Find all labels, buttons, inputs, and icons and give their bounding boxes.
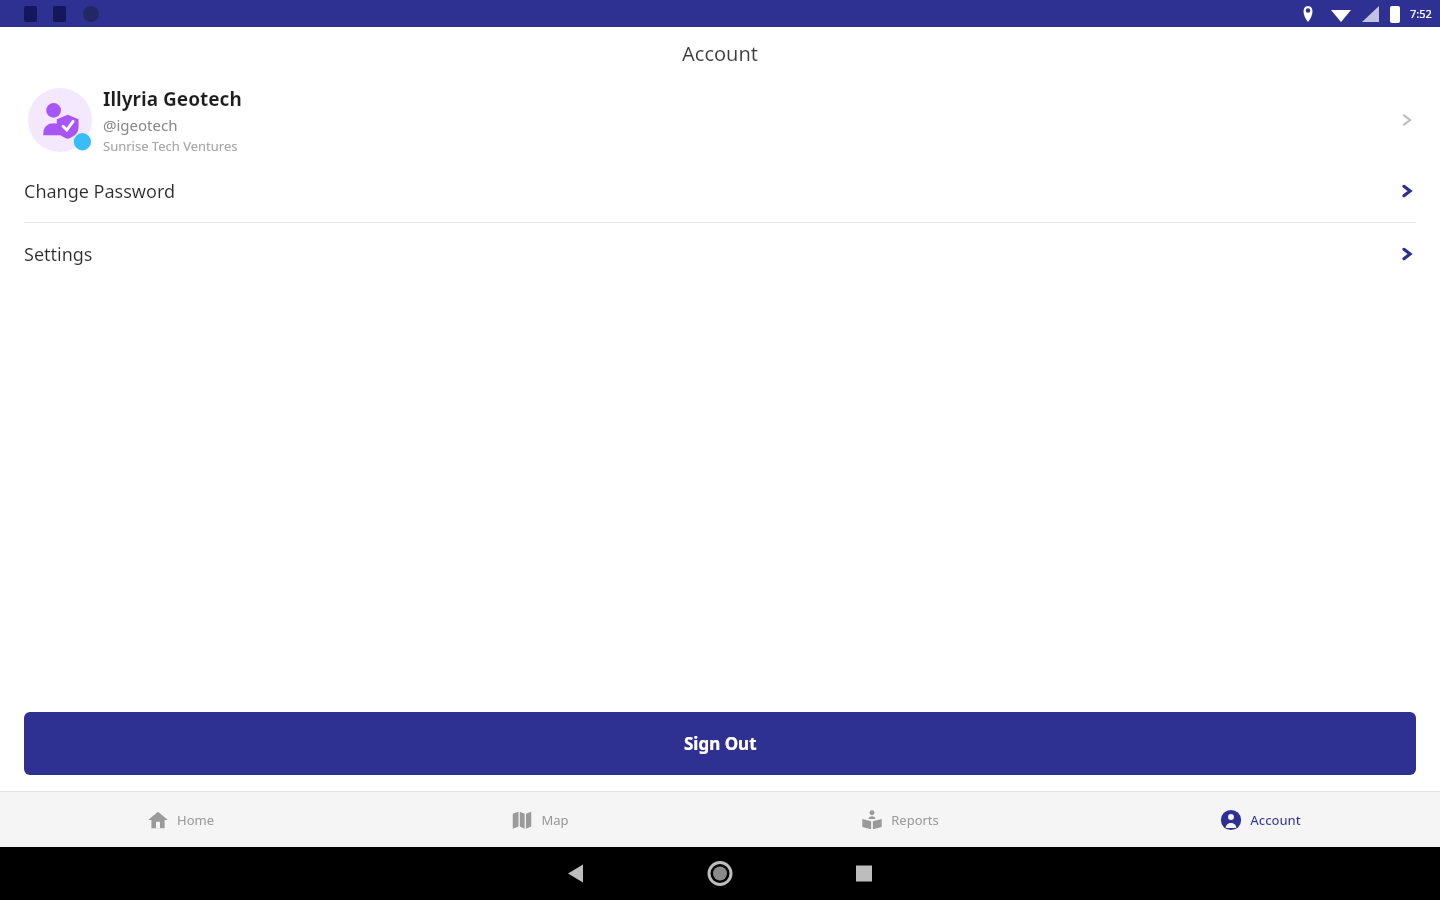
staticText: Reports: [891, 811, 939, 829]
button[interactable]: Change Password: [0, 160, 1440, 222]
staticText: Illyria Geotech: [103, 86, 242, 112]
button[interactable]: Account: [1080, 792, 1440, 847]
staticText: 7:52: [1410, 6, 1432, 21]
button[interactable]: Map: [360, 792, 720, 847]
staticText: Settings: [24, 242, 1398, 267]
button[interactable]: Sign Out: [24, 712, 1416, 775]
button[interactable]: Illyria Geotech: [0, 80, 1440, 160]
staticText: Change Password: [24, 179, 1398, 204]
staticText: Account: [1250, 811, 1301, 829]
button[interactable]: Settings: [0, 223, 1440, 285]
button[interactable]: Home: [0, 792, 360, 847]
staticText: Sunrise Tech Ventures: [103, 137, 238, 155]
staticText: Home: [177, 811, 214, 829]
staticText: @igeotech: [103, 115, 178, 135]
staticText: Account: [682, 40, 759, 67]
button[interactable]: Reports: [720, 792, 1080, 847]
staticText: Sign Out: [684, 732, 757, 755]
staticText: Map: [541, 811, 569, 829]
